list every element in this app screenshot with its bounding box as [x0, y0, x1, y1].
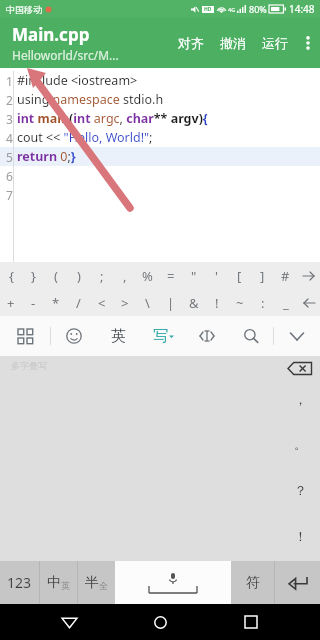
button[interactable]: ]	[251, 262, 274, 289]
button[interactable]: /	[67, 289, 90, 316]
button[interactable]: 撤消	[220, 18, 246, 68]
staticText: ,	[123, 267, 127, 285]
button[interactable]: Move left	[297, 289, 320, 316]
button[interactable]: ~	[228, 289, 251, 316]
button[interactable]: ;	[90, 262, 113, 289]
button[interactable]: '	[205, 262, 228, 289]
button[interactable]: Search	[229, 316, 273, 356]
staticText: Helloworld/src/M...	[12, 47, 119, 63]
button[interactable]: 多字叠写	[0, 356, 320, 561]
button[interactable]: Back	[47, 604, 91, 640]
staticText: 5	[6, 149, 13, 165]
button[interactable]: !	[205, 289, 228, 316]
button[interactable]: More options	[296, 18, 320, 68]
staticText: 1	[6, 73, 13, 89]
button[interactable]: Home	[138, 604, 182, 640]
button[interactable]: 。	[280, 421, 320, 467]
button[interactable]: Backspace	[287, 361, 313, 376]
button[interactable]: Hide keyboard	[274, 316, 320, 356]
button[interactable]: \	[136, 289, 159, 316]
staticText: ]	[260, 267, 265, 285]
button[interactable]: 写	[141, 316, 185, 356]
button[interactable]: =	[159, 262, 182, 289]
staticText: 半	[85, 574, 99, 592]
button[interactable]: Move right	[297, 262, 320, 289]
staticText: 7	[6, 187, 13, 203]
staticText: >	[121, 294, 129, 312]
staticText: #	[281, 267, 290, 285]
button[interactable]: 1	[0, 71, 320, 90]
button[interactable]: *	[44, 289, 67, 316]
button[interactable]: {	[0, 262, 22, 289]
button[interactable]: ,	[113, 262, 136, 289]
staticText: HD	[204, 6, 212, 13]
button[interactable]: )	[67, 262, 90, 289]
button[interactable]: 4	[0, 128, 320, 147]
staticText: "	[191, 267, 197, 285]
button[interactable]: #	[274, 262, 297, 289]
button[interactable]: 6	[0, 166, 320, 185]
button[interactable]: 英	[96, 316, 141, 356]
button[interactable]: Recent apps	[229, 604, 273, 640]
staticText: 。	[294, 436, 307, 452]
staticText: |	[167, 294, 175, 312]
button[interactable]: -	[22, 289, 44, 316]
staticText: 中国移动	[6, 4, 42, 15]
button[interactable]: (	[44, 262, 67, 289]
staticText: ~	[236, 294, 244, 312]
button[interactable]: 7	[0, 185, 320, 204]
button[interactable]: Enter	[275, 561, 320, 604]
staticText: {	[9, 267, 14, 285]
staticText: _	[283, 294, 289, 312]
button[interactable]: +	[0, 289, 22, 316]
staticText: return 0;}	[17, 148, 76, 165]
button[interactable]: |	[159, 289, 182, 316]
button[interactable]: 半	[78, 561, 115, 604]
button[interactable]: 123	[0, 561, 39, 604]
button[interactable]: ？	[280, 467, 320, 513]
button[interactable]: 符	[231, 561, 274, 604]
staticText: )	[77, 267, 81, 285]
button[interactable]: ！	[280, 513, 320, 559]
button[interactable]: 5	[0, 147, 320, 166]
button[interactable]: }	[22, 262, 44, 289]
button[interactable]: <	[90, 289, 113, 316]
button[interactable]: :	[251, 289, 274, 316]
staticText: 对齐	[178, 35, 204, 51]
staticText: &	[189, 294, 199, 312]
staticText: 撤消	[220, 35, 246, 51]
button[interactable]: "	[182, 262, 205, 289]
staticText: ！	[294, 528, 307, 544]
staticText: 多字叠写	[11, 360, 47, 371]
button[interactable]: _	[274, 289, 297, 316]
button[interactable]: &	[182, 289, 205, 316]
staticText: 运行	[262, 35, 288, 51]
staticText: 123	[7, 573, 32, 592]
staticText: ，	[294, 391, 307, 407]
staticText: #include <iostream>	[17, 72, 138, 89]
button[interactable]: [	[228, 262, 251, 289]
staticText: %	[142, 267, 153, 285]
button[interactable]: Space	[115, 561, 231, 604]
button[interactable]: 3	[0, 109, 320, 128]
staticText: 全	[99, 580, 108, 591]
button[interactable]: %	[136, 262, 159, 289]
button[interactable]: Move cursor	[185, 316, 229, 356]
staticText: -	[31, 294, 36, 312]
button[interactable]: Keyboard layouts	[0, 316, 50, 356]
button[interactable]: 中	[40, 561, 77, 604]
button[interactable]: 运行	[262, 18, 288, 68]
staticText: int main(int argc, char** argv){	[17, 110, 208, 127]
button[interactable]: >	[113, 289, 136, 316]
staticText: 6	[6, 168, 13, 184]
staticText: 英	[111, 327, 126, 346]
staticText: /	[76, 294, 81, 312]
staticText: 符	[246, 574, 260, 592]
button[interactable]: 2	[0, 90, 320, 109]
staticText: }	[31, 267, 36, 285]
button[interactable]: 对齐	[178, 18, 204, 68]
button[interactable]: Emoji	[51, 316, 96, 356]
staticText: 英	[61, 580, 70, 591]
button[interactable]: ，	[280, 376, 320, 421]
staticText: 3	[6, 111, 13, 127]
